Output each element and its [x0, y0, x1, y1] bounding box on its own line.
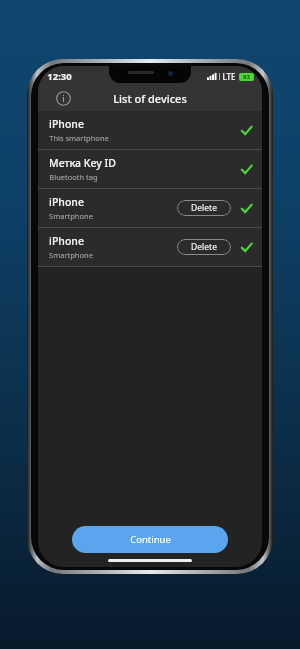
button[interactable]: iPhone — [38, 228, 262, 266]
staticText: Smartphone — [49, 211, 93, 221]
button[interactable]: Continue — [72, 526, 228, 553]
button[interactable]: Delete — [177, 200, 231, 216]
staticText: List of devices — [113, 91, 187, 106]
staticText: iPhone — [49, 195, 84, 209]
staticText: Smartphone — [49, 250, 93, 260]
button[interactable]: Info — [56, 91, 71, 106]
staticText: Bluetooth tag — [49, 172, 98, 182]
staticText: Delete — [191, 202, 217, 214]
button[interactable]: iPhone — [38, 111, 262, 149]
staticText: 83 — [243, 73, 250, 81]
staticText: 12:30 — [47, 70, 72, 83]
button[interactable]: iPhone — [38, 189, 262, 227]
staticText: LTE — [222, 71, 236, 82]
button[interactable]: Delete — [177, 239, 231, 255]
staticText: i — [62, 93, 65, 104]
staticText: This smartphone — [49, 133, 109, 143]
staticText: iPhone — [49, 117, 84, 131]
staticText: Метка Key ID — [49, 156, 116, 170]
staticText: Continue — [130, 533, 171, 546]
staticText: iPhone — [49, 234, 84, 248]
staticText: Delete — [191, 241, 217, 253]
button[interactable]: Метка Key ID — [38, 150, 262, 188]
